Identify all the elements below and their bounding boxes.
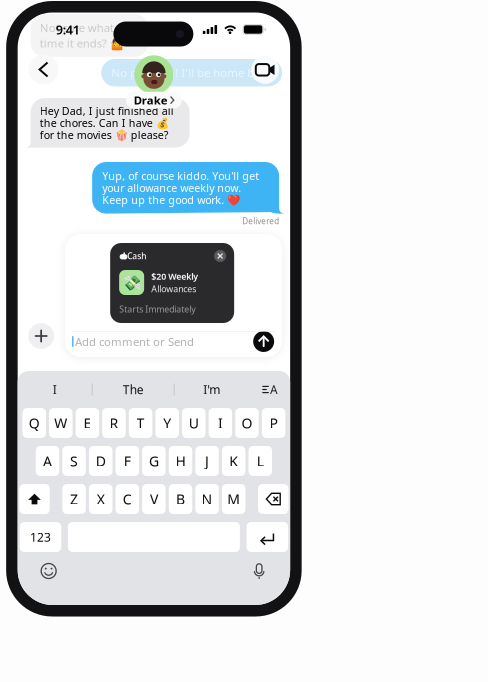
- button[interactable]: F: [116, 446, 139, 476]
- button[interactable]: I'm: [175, 374, 249, 404]
- button[interactable]: A: [36, 446, 59, 476]
- staticText: B: [176, 489, 185, 509]
- staticText: P: [270, 413, 278, 433]
- staticText: C: [123, 489, 132, 509]
- staticText: The: [123, 381, 144, 398]
- staticText: No problem! I'll be home by 9: [111, 65, 269, 80]
- staticText: Not sure what time it ends? 🤷: [40, 20, 124, 51]
- button[interactable]: B: [169, 484, 192, 514]
- staticText: I'm: [203, 381, 220, 398]
- staticText: M: [227, 489, 240, 509]
- button[interactable]: Drake: [126, 55, 182, 108]
- staticText: S: [70, 451, 78, 471]
- staticText: N: [202, 489, 213, 509]
- staticText: Cash: [127, 250, 146, 262]
- button[interactable]: Z: [62, 484, 86, 514]
- button[interactable]: Shift: [19, 484, 50, 514]
- staticText: Yup, of course kiddo. You'll get your al…: [102, 168, 259, 207]
- button[interactable]: W: [49, 408, 73, 438]
- staticText: Add comment or Send: [75, 334, 194, 349]
- button[interactable]: V: [142, 484, 166, 514]
- staticText: U: [189, 413, 199, 433]
- button[interactable]: Emoji: [35, 560, 63, 582]
- staticText: I: [53, 381, 57, 398]
- button[interactable]: X: [89, 484, 112, 514]
- staticText: W: [54, 413, 67, 433]
- button[interactable]: N: [195, 484, 219, 514]
- button[interactable]: E: [76, 408, 99, 438]
- staticText: $20 Weekly: [151, 270, 198, 282]
- staticText: G: [149, 451, 159, 471]
- staticText: X: [97, 489, 105, 509]
- button[interactable]: M: [222, 484, 245, 514]
- button[interactable]: R: [102, 408, 126, 438]
- button[interactable]: S: [62, 446, 86, 476]
- staticText: D: [96, 451, 106, 471]
- staticText: A: [43, 451, 52, 471]
- staticText: T: [137, 413, 145, 433]
- staticText: H: [175, 451, 185, 471]
- button[interactable]: I: [209, 408, 232, 438]
- staticText: J: [205, 451, 209, 471]
- staticText: Drake: [134, 92, 168, 108]
- button[interactable]: K: [222, 446, 245, 476]
- staticText: 9:41: [56, 21, 80, 38]
- button[interactable]: Dictation: [245, 560, 273, 582]
- staticText: E: [83, 413, 91, 433]
- button[interactable]: Back: [29, 54, 59, 84]
- button[interactable]: J: [195, 446, 219, 476]
- staticText: Allowances: [151, 283, 196, 295]
- button[interactable]: Send: [253, 331, 274, 352]
- button[interactable]: D: [89, 446, 112, 476]
- staticText: 💸: [123, 274, 141, 291]
- button[interactable]: U: [182, 408, 206, 438]
- staticText: Z: [70, 489, 78, 509]
- staticText: O: [241, 413, 252, 433]
- staticText: Y: [163, 413, 171, 433]
- button[interactable]: C: [116, 484, 139, 514]
- button[interactable]: Y: [155, 408, 179, 438]
- button[interactable]: G: [142, 446, 166, 476]
- button[interactable]: Add attachment: [28, 323, 54, 349]
- staticText: V: [150, 489, 158, 509]
- button[interactable]: Delete: [258, 484, 288, 514]
- staticText: Hey Dad, I just finished all the chores.…: [40, 103, 174, 142]
- button[interactable]: The: [93, 374, 174, 404]
- button[interactable]: FaceTime: [251, 56, 279, 84]
- button[interactable]: P: [262, 408, 285, 438]
- button[interactable]: Return: [247, 522, 288, 552]
- staticText: L: [257, 451, 264, 471]
- staticText: Starts Immediately: [119, 303, 195, 315]
- button[interactable]: O: [235, 408, 259, 438]
- staticText: Q: [29, 413, 40, 433]
- button[interactable]: T: [129, 408, 152, 438]
- staticText: I: [218, 413, 223, 433]
- staticText: Delivered: [242, 216, 279, 226]
- staticText: 123: [30, 529, 51, 545]
- button[interactable]: 123: [20, 522, 61, 552]
- staticText: F: [124, 451, 131, 471]
- button[interactable]: Text formatting: [250, 374, 290, 404]
- button[interactable]: Q: [22, 408, 46, 438]
- button[interactable]: I: [18, 374, 92, 404]
- button[interactable]: H: [169, 446, 192, 476]
- staticText: R: [109, 413, 118, 433]
- staticText: A: [270, 381, 278, 398]
- button[interactable]: L: [248, 446, 272, 476]
- staticText: K: [229, 451, 238, 471]
